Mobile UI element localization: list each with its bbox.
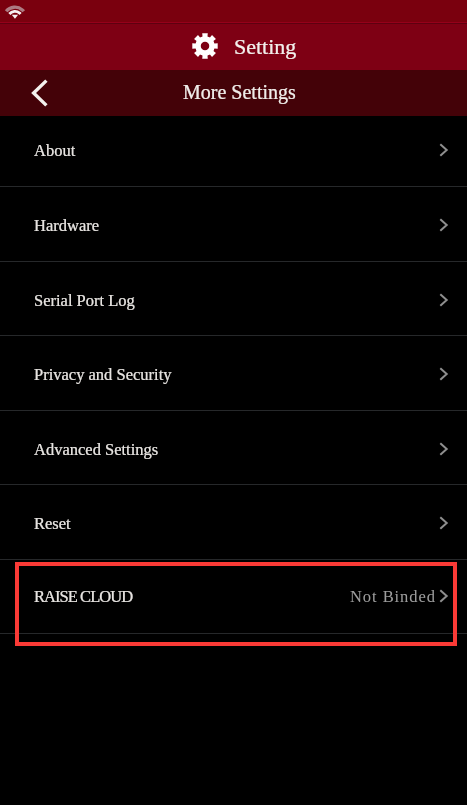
staticText: RAISE CLOUD (34, 587, 133, 605)
button[interactable]: Back (0, 70, 62, 116)
staticText: Setting (234, 34, 297, 58)
button[interactable]: Reset (0, 485, 467, 560)
staticText: Serial Port Log (34, 291, 135, 309)
button[interactable]: Hardware (0, 187, 467, 262)
staticText: More Settings (183, 81, 296, 103)
button[interactable]: Serial Port Log (0, 262, 467, 336)
button[interactable]: RAISE CLOUD (0, 560, 467, 634)
staticText: Hardware (34, 216, 100, 234)
staticText: Privacy and Security (34, 365, 172, 383)
button[interactable]: About (0, 116, 467, 187)
button[interactable]: Privacy and Security (0, 336, 467, 411)
staticText: Reset (34, 514, 71, 532)
button[interactable]: Advanced Settings (0, 411, 467, 485)
staticText: Not Binded (350, 587, 436, 605)
staticText: Advanced Settings (34, 440, 159, 458)
staticText: About (34, 141, 76, 159)
